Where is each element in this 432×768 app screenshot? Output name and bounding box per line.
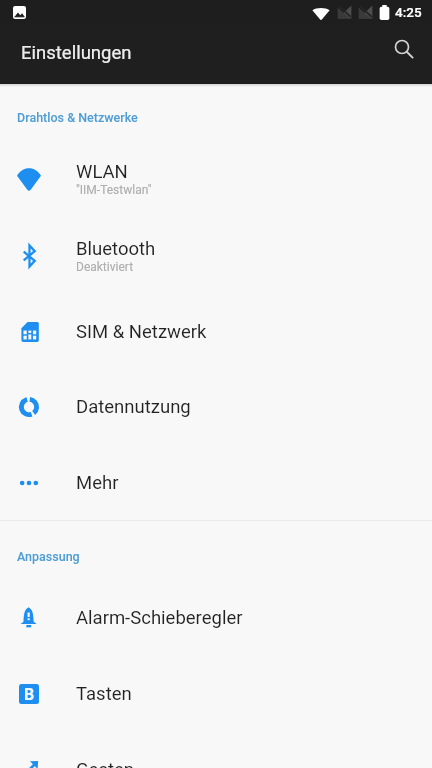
staticText: 4:25 — [395, 4, 422, 20]
staticText: SIM & Netzwerk — [76, 321, 207, 343]
button[interactable]: Gesten — [0, 732, 432, 768]
button[interactable]: Alarm-Schieberegler — [0, 580, 432, 656]
staticText: Anpassung — [17, 549, 80, 564]
button[interactable]: Bluetooth — [0, 218, 432, 294]
button[interactable]: B — [0, 656, 432, 732]
button[interactable]: SIM & Netzwerk — [0, 294, 432, 370]
staticText: Bluetooth — [76, 238, 156, 260]
button[interactable]: Mehr — [0, 445, 432, 521]
staticText: Einstellungen — [21, 42, 132, 64]
staticText: Drahtlos & Netzwerke — [17, 110, 138, 125]
staticText: Mehr — [76, 472, 119, 494]
button[interactable]: Search — [384, 29, 424, 69]
button[interactable]: WLAN — [0, 141, 432, 217]
staticText: B — [24, 685, 35, 704]
staticText: Alarm-Schieberegler — [76, 607, 243, 629]
staticText: WLAN — [76, 161, 128, 183]
staticText: Deaktiviert — [76, 260, 134, 274]
staticText: Tasten — [76, 683, 132, 705]
staticText: "IIM-Testwlan" — [76, 183, 152, 197]
button[interactable]: Datennutzung — [0, 369, 432, 445]
staticText: Datennutzung — [76, 396, 191, 418]
staticText: Gesten — [76, 759, 135, 768]
